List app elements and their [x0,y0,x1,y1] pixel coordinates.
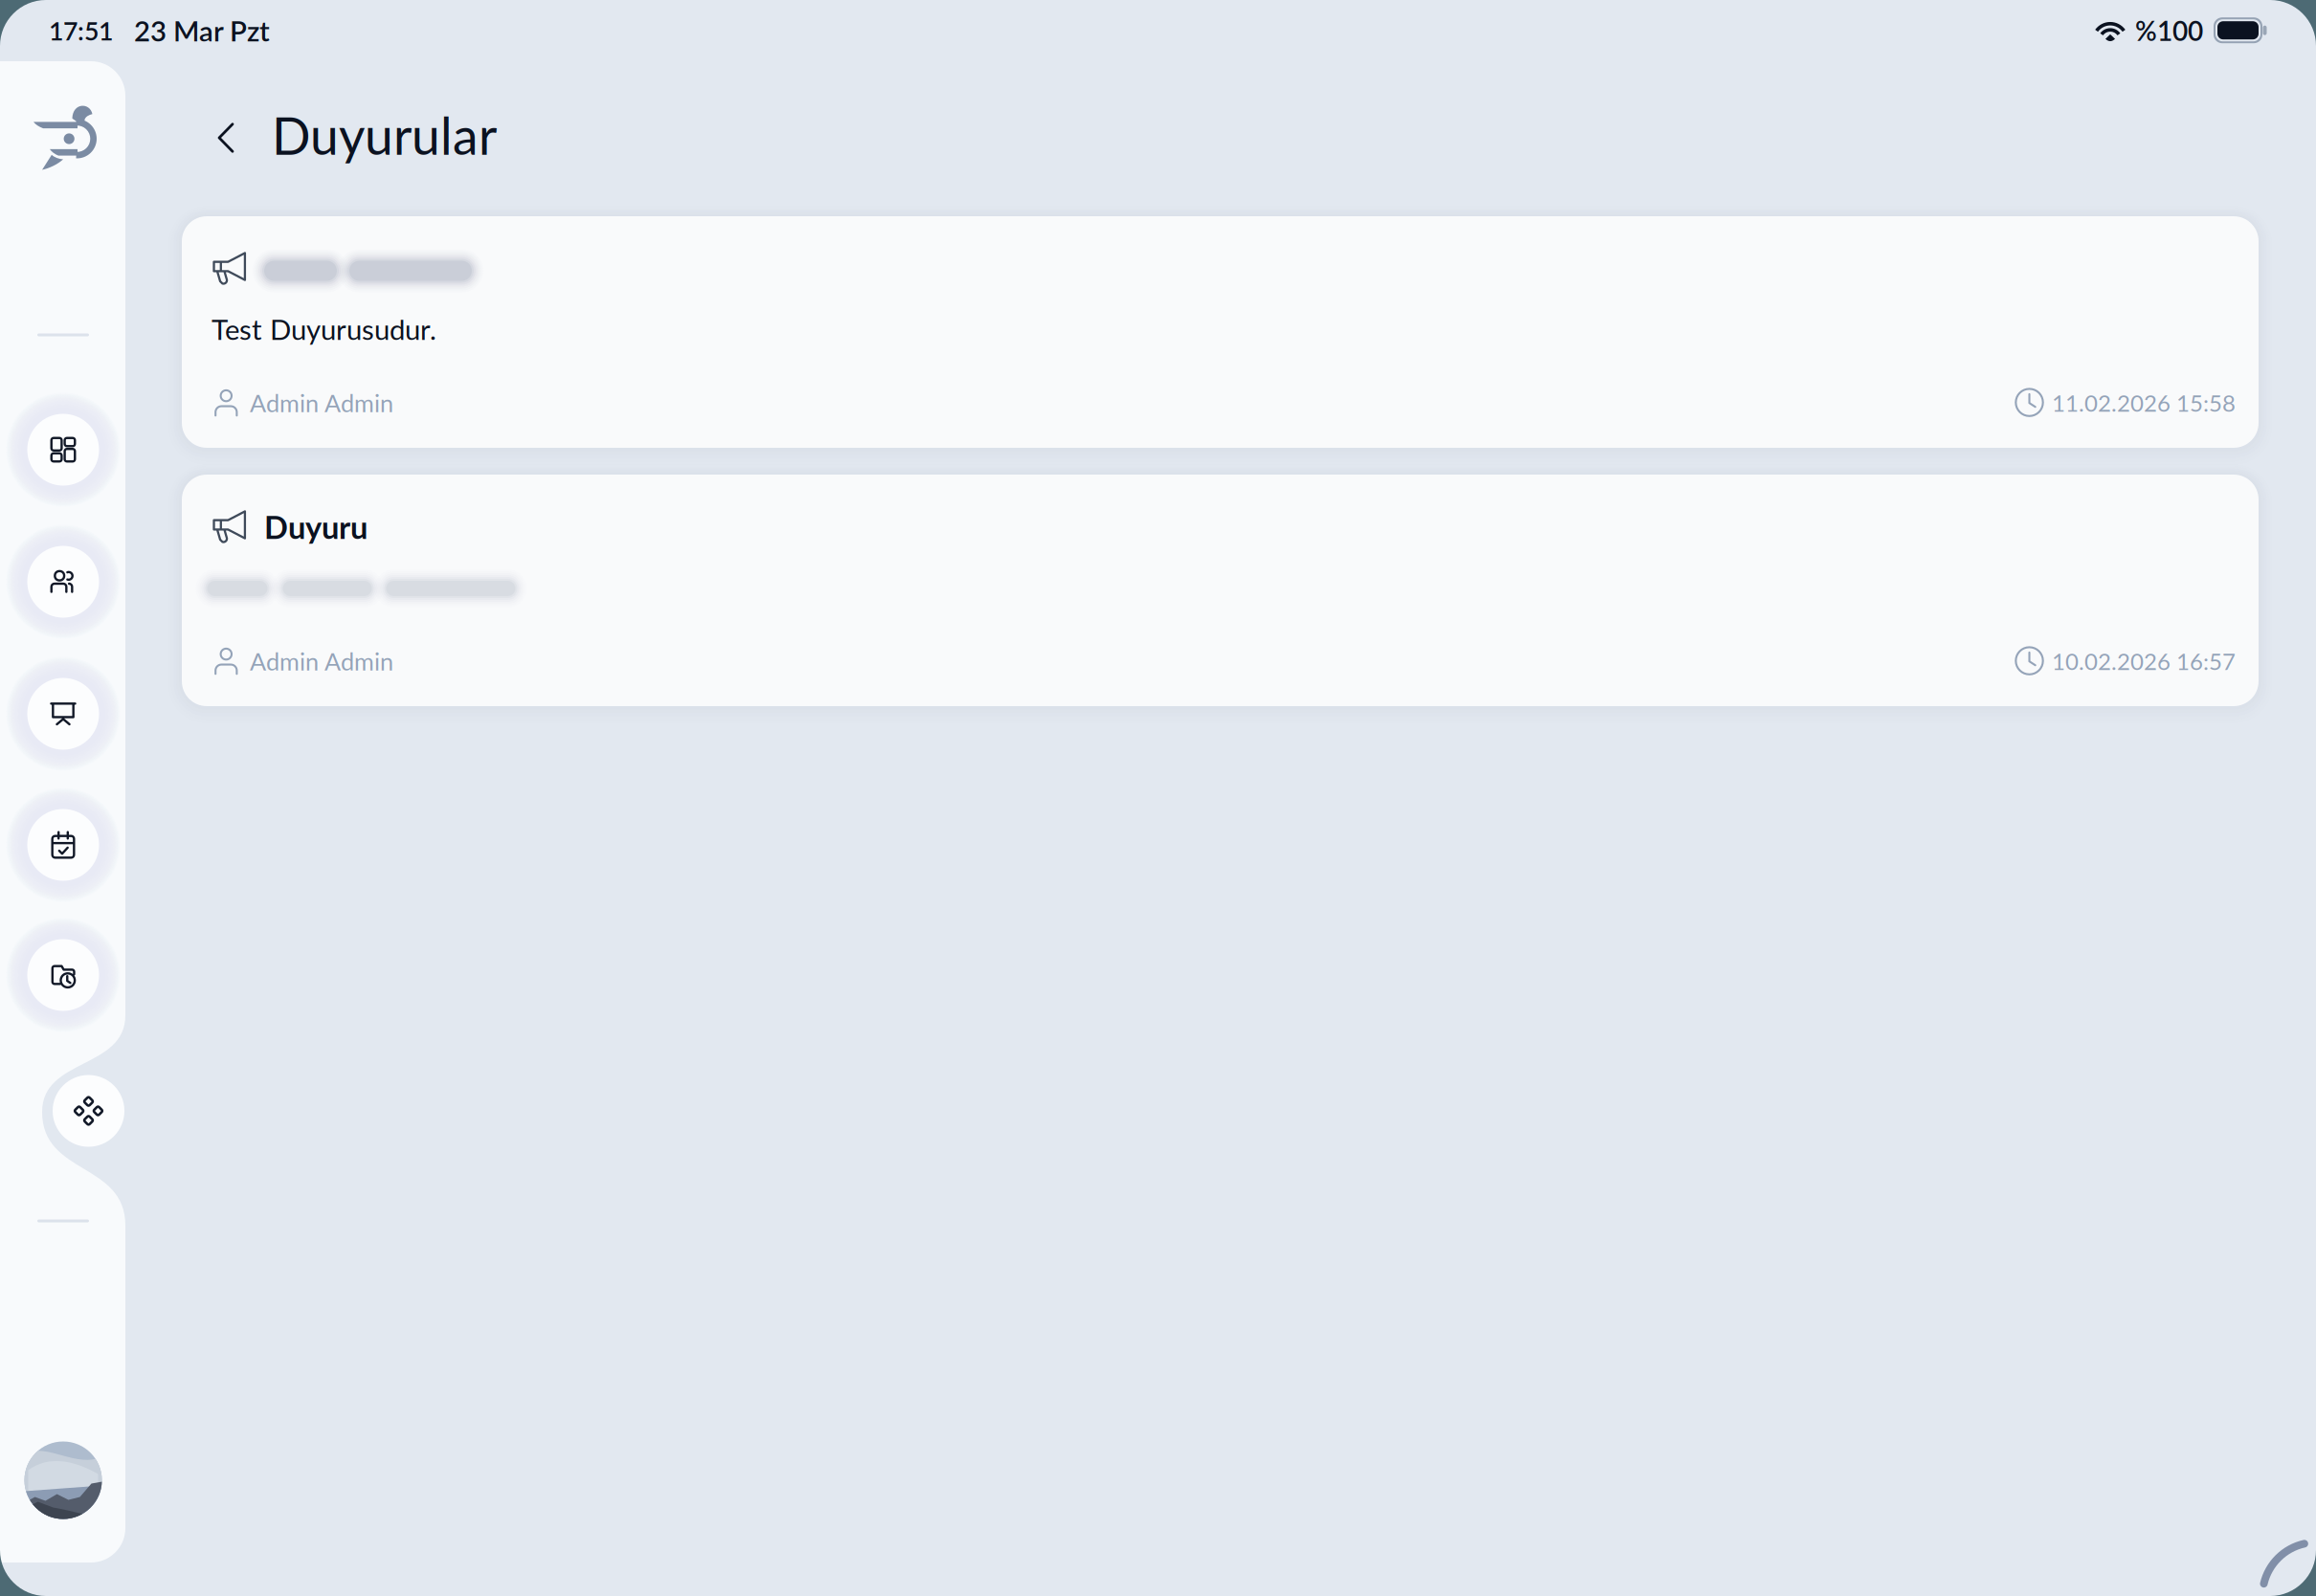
button[interactable]: Members [7,526,119,638]
staticText: 11.02.2026 15:58 [2052,389,2236,417]
button[interactable]: Duyuru [182,475,2259,706]
button[interactable]: Classes [7,658,119,770]
staticText: Test Duyurusudur. [212,312,436,346]
staticText: 17:51 [49,15,113,46]
button[interactable]: Test Duyurusudur. [182,216,2259,448]
staticText: Duyurular [272,104,497,166]
staticText: 23 Mar Pzt [134,14,270,47]
staticText: Admin Admin [250,388,393,417]
button[interactable]: Calendar [7,789,119,901]
button[interactable]: Apps [51,1073,126,1149]
button[interactable]: Archive [7,919,119,1031]
staticText: Duyuru [264,508,367,545]
button[interactable]: Profile [24,1441,102,1519]
button[interactable]: Back [194,106,257,169]
staticText: 10.02.2026 16:57 [2052,647,2236,675]
staticText: Admin Admin [250,647,393,676]
staticText: %100 [2135,15,2203,47]
button[interactable]: Dashboard [7,394,119,506]
